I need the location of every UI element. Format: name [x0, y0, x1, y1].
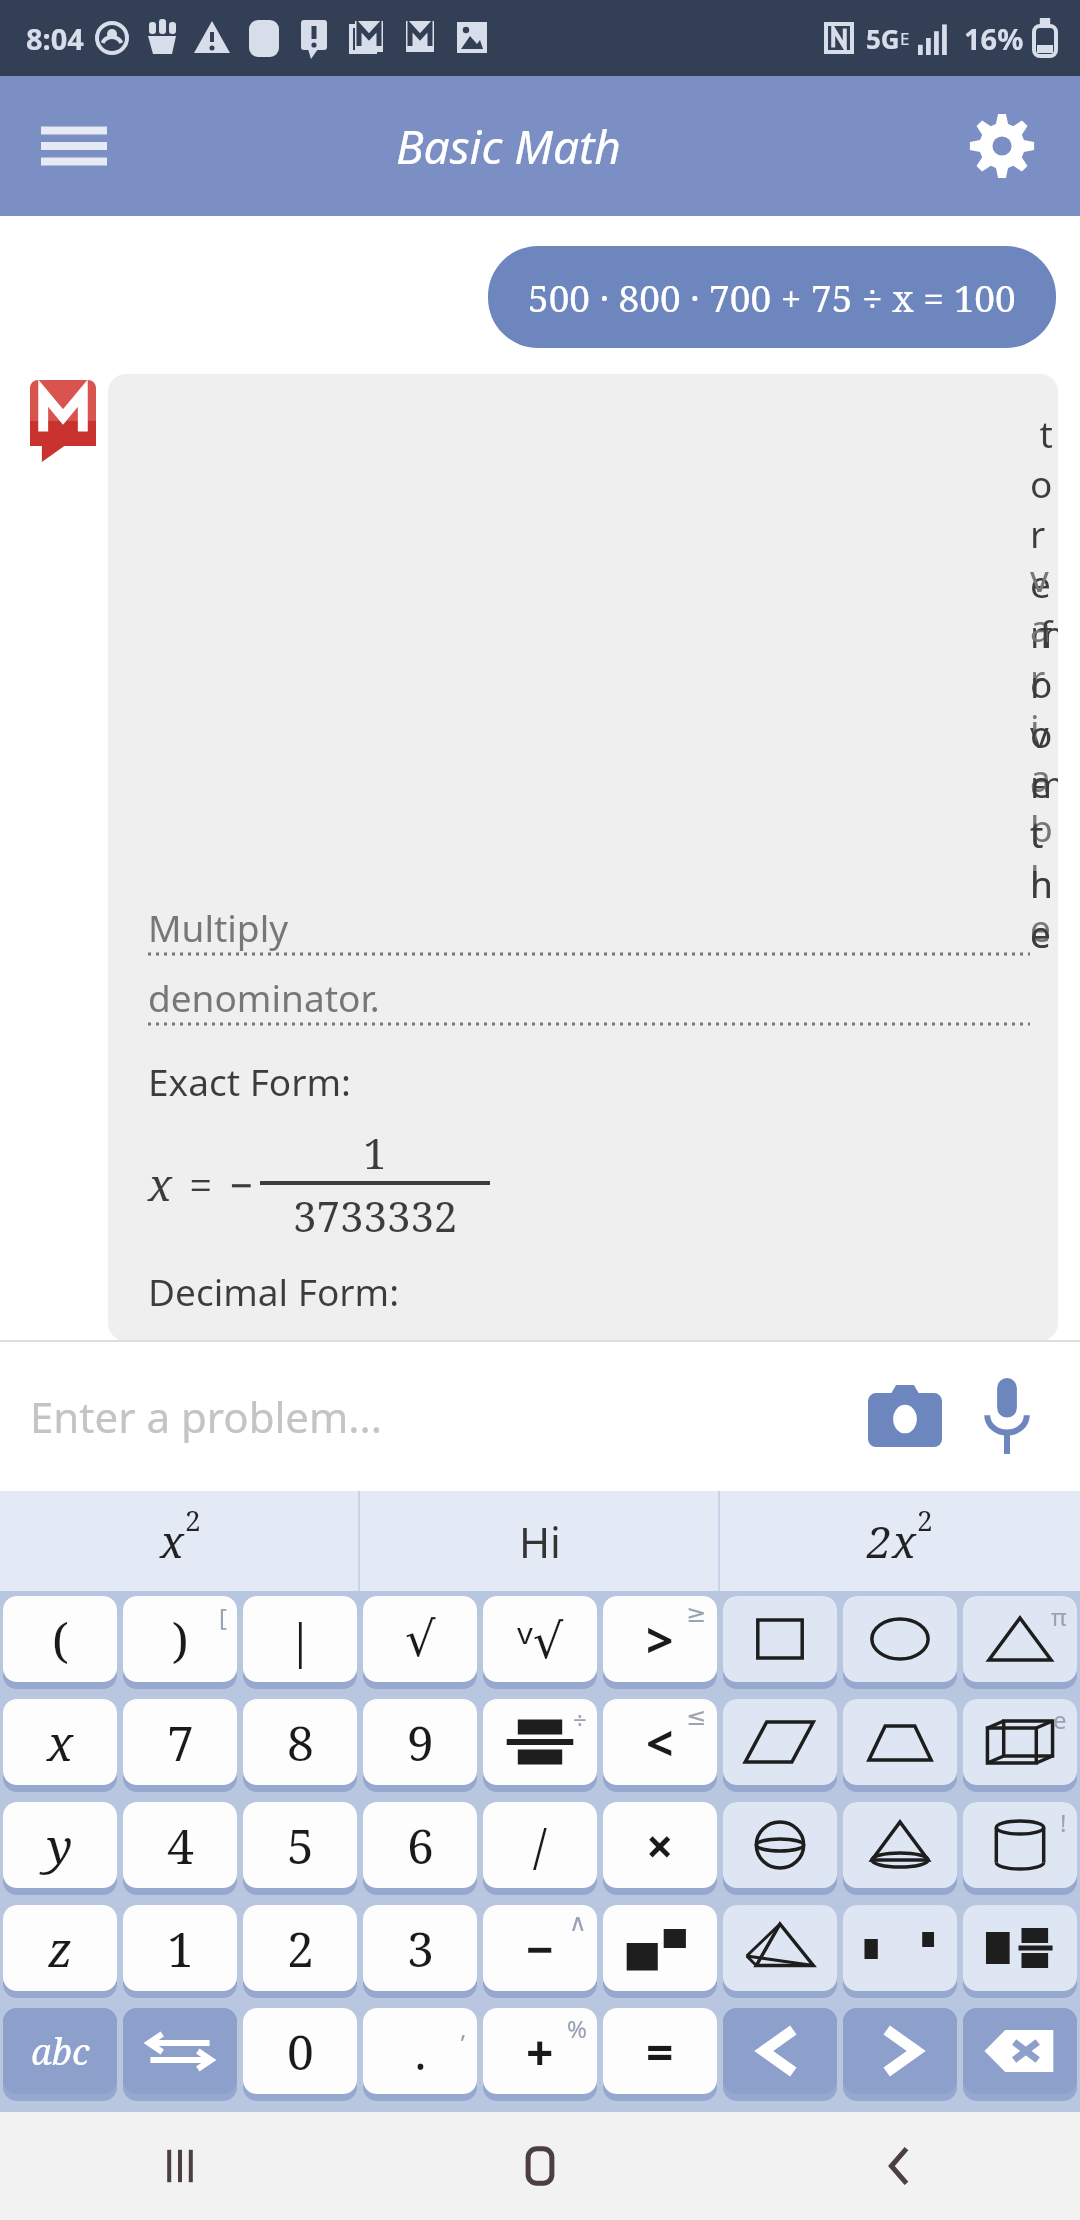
- button[interactable]: Recents: [0, 2112, 360, 2220]
- button[interactable]: Enter a problem...: [30, 1388, 860, 1445]
- staticText: ᵛ√: [517, 1607, 564, 1672]
- button[interactable]: cone2: [843, 1802, 957, 1888]
- button[interactable]: Hi: [360, 1491, 720, 1591]
- button[interactable]: cyl: [963, 1802, 1077, 1888]
- staticText: 5G: [866, 21, 900, 56]
- button[interactable]: 6: [363, 1802, 477, 1888]
- staticText: >: [646, 1607, 674, 1672]
- staticText: !: [1060, 1806, 1067, 1839]
- staticText: |: [287, 1607, 314, 1672]
- button[interactable]: 7: [123, 1699, 237, 1785]
- button[interactable]: Settings: [960, 104, 1044, 188]
- button[interactable]: >: [603, 1596, 717, 1682]
- button[interactable]: Menu: [36, 108, 112, 184]
- button[interactable]: 500 · 800 · 700 + 75 ÷ x = 100: [488, 246, 1056, 348]
- button[interactable]: cube: [963, 1699, 1077, 1785]
- button[interactable]: Back: [720, 2112, 1080, 2220]
- button[interactable]: ᵛ√: [483, 1596, 597, 1682]
- staticText: /: [533, 1813, 547, 1878]
- button[interactable]: frac: [483, 1699, 597, 1785]
- staticText: 1: [363, 1124, 387, 1181]
- button[interactable]: =: [603, 2008, 717, 2094]
- staticText: ≤: [686, 1703, 707, 1731]
- staticText: Hi: [519, 1513, 561, 1570]
- staticText: z: [48, 1916, 73, 1981]
- button[interactable]: swap: [123, 2008, 237, 2094]
- button[interactable]: trap: [843, 1699, 957, 1785]
- button[interactable]: z: [3, 1905, 117, 1991]
- staticText: =: [646, 2019, 674, 2084]
- button[interactable]: 5: [243, 1802, 357, 1888]
- button[interactable]: abc: [3, 2008, 117, 2094]
- button[interactable]: √: [363, 1596, 477, 1682]
- button[interactable]: /: [483, 1802, 597, 1888]
- button[interactable]: 3: [363, 1905, 477, 1991]
- button[interactable]: ): [123, 1596, 237, 1682]
- staticText: ≥: [686, 1600, 707, 1628]
- staticText: 3733332: [293, 1187, 458, 1244]
- button[interactable]: sphere: [723, 1802, 837, 1888]
- button[interactable]: −: [483, 1905, 597, 1991]
- staticText: 16%: [964, 19, 1024, 58]
- button[interactable]: pow: [603, 1905, 717, 1991]
- staticText: x: [148, 1154, 173, 1214]
- staticText: Exact Form:: [148, 1056, 352, 1106]
- button[interactable]: 9: [363, 1699, 477, 1785]
- staticText: 7: [167, 1710, 194, 1775]
- staticText: 3: [407, 1916, 434, 1981]
- button[interactable]: +: [483, 2008, 597, 2094]
- button[interactable]: .: [363, 2008, 477, 2094]
- button[interactable]: <: [603, 1699, 717, 1785]
- button[interactable]: |: [243, 1596, 357, 1682]
- staticText: ,: [460, 2012, 467, 2045]
- button[interactable]: (: [3, 1596, 117, 1682]
- staticText: x: [892, 1511, 917, 1571]
- staticText: Multiply: [148, 902, 289, 952]
- staticText: 2: [867, 1511, 892, 1571]
- staticText: E: [900, 27, 910, 50]
- button[interactable]: x: [0, 1491, 360, 1591]
- button[interactable]: 8: [243, 1699, 357, 1785]
- staticText: abc: [31, 2027, 90, 2076]
- button[interactable]: 4: [123, 1802, 237, 1888]
- staticText: .: [414, 2019, 427, 2084]
- button[interactable]: Multiply: [108, 374, 1058, 1341]
- staticText: %: [567, 2012, 587, 2045]
- staticText: =: [189, 1156, 213, 1213]
- button[interactable]: x: [3, 1699, 117, 1785]
- staticText: 0: [287, 2019, 314, 2084]
- button[interactable]: mix: [963, 1905, 1077, 1991]
- button[interactable]: 1: [123, 1905, 237, 1991]
- staticText: 5: [287, 1813, 314, 1878]
- button[interactable]: circle: [843, 1596, 957, 1682]
- button[interactable]: Voice input: [964, 1373, 1050, 1459]
- staticText: √: [405, 1611, 436, 1667]
- staticText: 4: [167, 1813, 194, 1878]
- button[interactable]: 2: [720, 1491, 1080, 1591]
- staticText: ∧: [569, 1909, 587, 1937]
- staticText: x: [47, 1710, 74, 1775]
- button[interactable]: y: [3, 1802, 117, 1888]
- staticText: (: [52, 1607, 69, 1672]
- button[interactable]: Camera: [860, 1371, 950, 1461]
- button[interactable]: Home: [360, 2112, 720, 2220]
- button[interactable]: para: [723, 1699, 837, 1785]
- button[interactable]: tri: [963, 1596, 1077, 1682]
- staticText: +: [526, 2019, 554, 2084]
- staticText: ): [172, 1607, 189, 1672]
- staticText: e: [1053, 1703, 1067, 1736]
- button[interactable]: sci: [843, 1905, 957, 1991]
- button[interactable]: ×: [603, 1802, 717, 1888]
- staticText: y: [47, 1813, 73, 1878]
- button[interactable]: pyr: [723, 1905, 837, 1991]
- staticText: −: [526, 1916, 554, 1981]
- button[interactable]: right: [843, 2008, 957, 2094]
- button[interactable]: square: [723, 1596, 837, 1682]
- staticText: Decimal Form:: [148, 1266, 400, 1316]
- button[interactable]: del: [963, 2008, 1077, 2094]
- button[interactable]: 0: [243, 2008, 357, 2094]
- button[interactable]: left: [723, 2008, 837, 2094]
- staticText: x: [160, 1511, 185, 1571]
- staticText: [: [219, 1600, 227, 1633]
- button[interactable]: 2: [243, 1905, 357, 1991]
